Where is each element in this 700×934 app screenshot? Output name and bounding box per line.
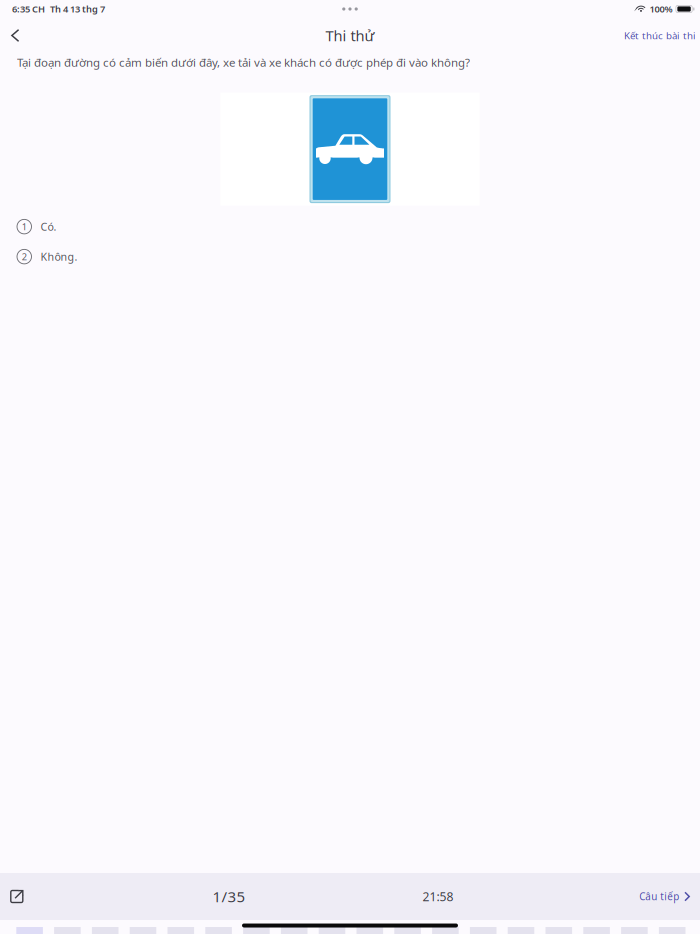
staticText: Có. [40, 218, 56, 235]
staticText: Thi thử [325, 24, 374, 47]
staticText: 21:58 [422, 887, 453, 906]
staticText: Kết thúc bài thi [624, 28, 696, 43]
staticText: 1 [22, 219, 27, 234]
staticText: Tại đoạn đường có cảm biến dưới đây, xe … [17, 53, 470, 72]
button[interactable]: 1 [0, 212, 700, 242]
staticText: 100% [649, 1, 672, 16]
button[interactable]: 2 [0, 242, 700, 272]
button[interactable]: Câu tiếp [631, 879, 700, 913]
staticText: Câu tiếp [639, 888, 679, 904]
button[interactable]: Report question [0, 881, 34, 912]
button[interactable]: Back [0, 23, 30, 48]
staticText: 2 [22, 249, 27, 264]
button[interactable]: Kết thúc bài thi [616, 21, 700, 50]
staticText: Không. [40, 248, 77, 265]
staticText: 6:35 CH [12, 1, 45, 16]
staticText: Th 4 13 thg 7 [50, 1, 105, 16]
staticText: 1/35 [212, 884, 245, 909]
